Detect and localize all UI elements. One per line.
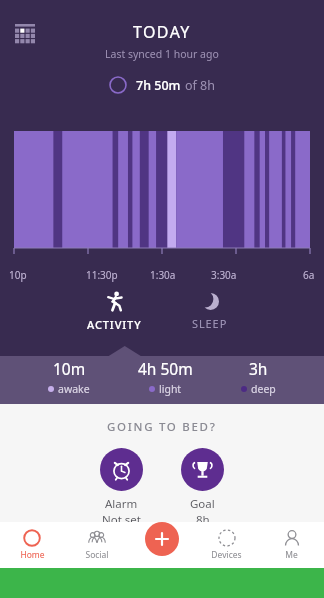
staticText: of 8h xyxy=(185,77,215,94)
button[interactable]: Alarm xyxy=(92,448,151,522)
staticText: GOING TO BED? xyxy=(107,419,217,435)
button[interactable]: Home xyxy=(0,522,64,568)
staticText: light xyxy=(159,382,182,396)
staticText: deep xyxy=(251,382,276,396)
staticText: Alarm xyxy=(105,496,138,512)
staticText: Me xyxy=(285,549,298,561)
staticText: 3:30a xyxy=(211,268,237,282)
staticText: Devices xyxy=(211,549,242,561)
button[interactable]: Goal xyxy=(173,448,232,522)
staticText: 4h 50m xyxy=(138,358,193,379)
staticText: 7h 50m xyxy=(136,77,181,94)
button[interactable]: ACTIVITY xyxy=(66,286,162,346)
button[interactable]: Calendar xyxy=(9,18,41,50)
button[interactable]: SLEEP xyxy=(162,286,258,346)
staticText: 1:30a xyxy=(150,268,176,282)
staticText: ACTIVITY xyxy=(87,317,142,332)
staticText: Goal xyxy=(190,496,215,512)
staticText: 6a xyxy=(303,268,315,282)
button[interactable]: Me xyxy=(259,522,324,568)
staticText: TODAY xyxy=(133,21,191,43)
staticText: 10p xyxy=(9,268,27,282)
staticText: 3h xyxy=(249,358,268,379)
button[interactable]: Devices xyxy=(194,522,259,568)
staticText: Last synced 1 hour ago xyxy=(105,47,219,61)
staticText: Home xyxy=(20,549,45,561)
staticText: 10m xyxy=(53,358,86,379)
staticText: SLEEP xyxy=(192,316,228,331)
staticText: 8h xyxy=(196,512,210,522)
staticText: awake xyxy=(58,382,90,396)
staticText: Not set xyxy=(102,512,141,522)
staticText: 11:30p xyxy=(86,268,118,282)
button[interactable]: Social xyxy=(64,522,129,568)
staticText: Social xyxy=(85,549,109,561)
button[interactable]: Add xyxy=(145,522,179,556)
